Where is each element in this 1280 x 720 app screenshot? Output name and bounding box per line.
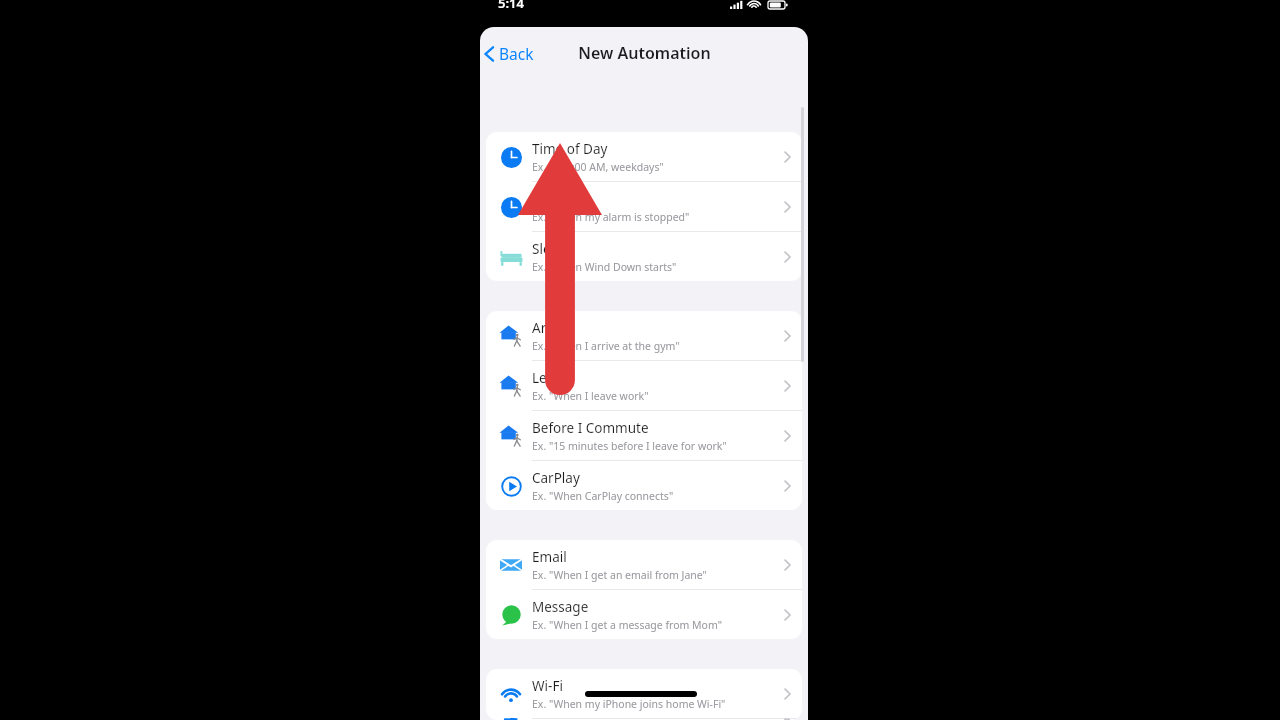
button[interactable]: Message xyxy=(486,590,802,639)
staticText: Ex. "When I get an email from Jane" xyxy=(532,568,707,582)
staticText: Ex. "When I arrive at the gym" xyxy=(532,339,680,353)
staticText: Time of Day xyxy=(532,140,608,158)
staticText: New Automation xyxy=(578,42,711,64)
staticText: Ex. "When Wind Down starts" xyxy=(532,260,677,274)
staticText: Ex. "When I leave work" xyxy=(532,389,649,403)
staticText: Arrive xyxy=(532,319,570,337)
staticText: Wi-Fi xyxy=(532,677,563,695)
button[interactable]: Arrive xyxy=(486,311,802,360)
staticText: Message xyxy=(532,598,589,616)
staticText: Ex. "When CarPlay connects" xyxy=(532,489,674,503)
button[interactable]: CarPlay xyxy=(486,461,802,510)
staticText: Ex. "When my alarm is stopped" xyxy=(532,210,690,224)
staticText: Ex. "At 8:00 AM, weekdays" xyxy=(532,160,664,174)
staticText: Sleep xyxy=(532,240,567,258)
button[interactable]: Before I Commute xyxy=(486,411,802,460)
button[interactable]: Leave xyxy=(486,361,802,410)
button[interactable]: Wi-Fi xyxy=(486,669,802,718)
button[interactable]: Time of Day xyxy=(486,132,802,181)
staticText: Leave xyxy=(532,369,569,387)
staticText: CarPlay xyxy=(532,469,580,487)
staticText: 5:14 xyxy=(498,0,524,12)
staticText: Ex. "When I get a message from Mom" xyxy=(532,618,722,632)
button[interactable]: Bluetooth xyxy=(486,719,802,720)
button[interactable]: Alarm xyxy=(486,182,802,231)
other: Scroll up indicator xyxy=(518,143,602,395)
button[interactable]: Sleep xyxy=(486,232,802,281)
staticText: Back xyxy=(499,43,534,64)
button[interactable]: Back xyxy=(481,37,542,70)
staticText: Before I Commute xyxy=(532,419,649,437)
button[interactable]: Email xyxy=(486,540,802,589)
staticText: Email xyxy=(532,548,567,566)
staticText: Ex. "When my iPhone joins home Wi-Fi" xyxy=(532,697,726,711)
staticText: Ex. "15 minutes before I leave for work" xyxy=(532,439,727,453)
